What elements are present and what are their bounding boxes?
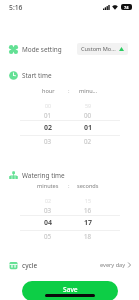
staticText: 18 [84,232,92,240]
staticText: 02 [84,137,92,145]
staticText: Custom Mo... [81,45,116,53]
staticText: Watering time [22,171,65,180]
staticText: 01 [84,123,93,133]
other: Watering time [9,171,18,180]
staticText: Mode setting [22,45,62,54]
other: Mode [9,45,18,54]
button[interactable]: hour [0,84,139,146]
staticText: 00 [84,111,92,119]
staticText: 05 [44,232,52,240]
button[interactable]: cycle [0,257,139,273]
staticText: hour [42,87,55,95]
other: cycle [9,261,18,270]
button[interactable]: Save [22,281,118,300]
staticText: 5:16 [9,3,23,12]
staticText: Save [63,285,78,294]
staticText: 02 [45,197,51,204]
other: Start time [9,71,18,80]
staticText: seconds [77,182,99,190]
button[interactable]: Custom Mo... [77,43,128,55]
staticText: minu... [79,87,98,95]
staticText: 04 [44,218,53,228]
staticText: 03 [44,137,52,145]
button[interactable]: Mode [0,40,139,58]
staticText: cycle [22,261,38,270]
staticText: 16 [84,206,92,214]
staticText: 74 [124,5,129,10]
staticText: 00 [45,102,51,109]
button[interactable]: minutes [0,179,139,241]
staticText: 17 [84,218,93,228]
staticText: 02 [44,123,53,133]
staticText: every day [100,261,126,269]
staticText: : [68,87,70,95]
staticText: Start time [22,71,52,80]
staticText: 59 [85,102,91,109]
staticText: 01 [44,111,52,119]
staticText: : [68,182,70,190]
staticText: minutes [37,182,59,190]
staticText: 03 [44,206,52,214]
staticText: 15 [85,197,91,204]
